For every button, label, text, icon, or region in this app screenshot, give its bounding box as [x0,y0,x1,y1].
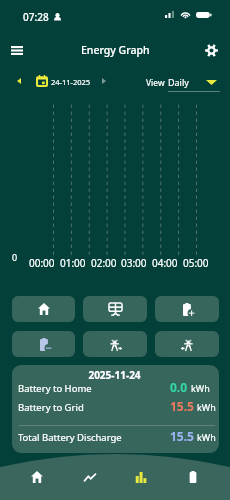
staticText: 00:00 [29,256,55,270]
staticText: kWh [197,401,216,413]
staticText: Battery to Grid [18,401,84,414]
staticText: 02:00 [91,256,117,270]
staticText: 0 [12,251,18,263]
staticText: 24-11-2025 [51,77,91,87]
staticText: Total Battery Discharge [18,431,122,444]
button[interactable]: Battery discharge [12,331,75,357]
button[interactable]: Next day [95,72,113,90]
staticText: Battery to Home [18,382,92,395]
button[interactable]: Solar production [83,296,147,322]
staticText: 2025-11-24 [12,368,218,382]
button[interactable]: Home consumption [12,296,75,322]
button[interactable]: Previous day [10,72,28,90]
staticText: 15.5 [170,398,194,414]
button[interactable]: Energy graph [124,460,158,494]
button[interactable]: Battery charge [155,296,219,322]
staticText: 04:00 [152,256,178,270]
staticText: 03:00 [121,256,147,270]
staticText: 07:28 [23,10,49,24]
button[interactable]: Daily [168,70,222,94]
staticText: kWh [191,382,210,394]
staticText: 15.5 [170,428,194,444]
button[interactable]: Export to grid [83,331,147,357]
button[interactable]: Home [20,460,54,494]
button[interactable]: Settings [199,38,224,63]
staticText: 05:00 [183,256,209,270]
button[interactable]: Battery [176,460,210,494]
staticText: Daily [168,76,189,88]
button[interactable]: Open navigation menu [4,38,29,63]
staticText: Energy Graph [81,43,150,57]
staticText: kWh [197,431,216,443]
button[interactable]: Trends [73,461,107,495]
staticText: 01:00 [60,256,86,270]
staticText: 0.0 [170,379,188,395]
staticText: View [146,77,165,89]
button[interactable]: Import from grid [155,331,219,357]
